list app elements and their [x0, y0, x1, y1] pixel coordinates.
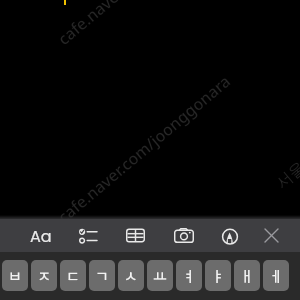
staticText: ㅅ — [124, 265, 138, 287]
staticText: cafe.naver.com/joonggonara — [53, 70, 235, 228]
staticText: ㄱ — [95, 265, 109, 287]
staticText: ㅐ — [240, 265, 254, 287]
staticText: cafe.naver.com/joonggonara — [53, 0, 235, 50]
button[interactable]: ㅈ — [31, 260, 57, 291]
button[interactable]: ㄱ — [89, 260, 115, 291]
button[interactable]: ㅐ — [234, 260, 260, 291]
button[interactable]: ㅅ — [118, 260, 144, 291]
staticText: 서울 — [272, 157, 300, 193]
staticText: ㅕ — [182, 265, 196, 287]
button[interactable]: ㅑ — [205, 260, 231, 291]
button[interactable]: ㄷ — [60, 260, 86, 291]
button[interactable]: Markup — [213, 219, 246, 252]
staticText: ㅂ — [8, 265, 22, 287]
button[interactable]: Text format — [24, 219, 57, 252]
button[interactable]: Close keyboard — [255, 219, 288, 252]
staticText: ㅔ — [269, 265, 283, 287]
button[interactable]: Insert table — [119, 219, 152, 252]
button[interactable]: Checklist — [71, 219, 104, 252]
staticText: ㅈ — [37, 265, 51, 287]
staticText: ㄷ — [66, 265, 80, 287]
button[interactable]: ㅔ — [263, 260, 289, 291]
button[interactable]: Camera — [167, 219, 200, 252]
button[interactable]: ㅕ — [176, 260, 202, 291]
staticText: ㅛ — [153, 265, 167, 287]
staticText: ㅑ — [211, 265, 225, 287]
button[interactable]: ㅛ — [147, 260, 173, 291]
staticText: Aa — [30, 225, 52, 247]
button[interactable]: ㅂ — [2, 260, 28, 291]
